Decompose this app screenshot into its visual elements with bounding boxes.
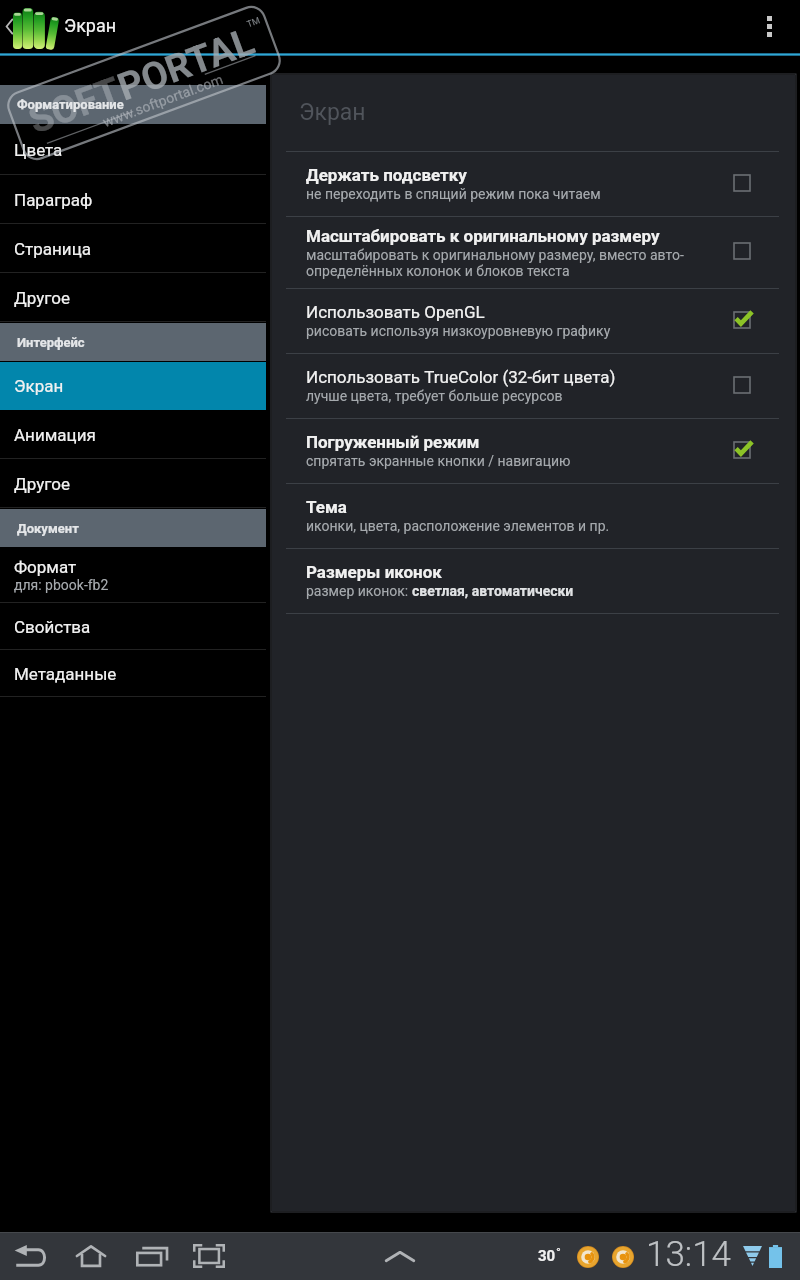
staticText: Формат [14, 557, 77, 577]
staticText: Тема [306, 497, 347, 517]
button[interactable]: Погруженный режим [272, 418, 795, 483]
staticText: SOFT [23, 68, 127, 143]
button[interactable]: Тема [272, 483, 795, 548]
staticText: Другое [14, 474, 70, 494]
button[interactable]: Свойства [0, 603, 266, 650]
staticText: Интерфейс [17, 335, 85, 350]
staticText: лучше цвета, требует больше ресурсов [306, 388, 563, 404]
staticText: масштабировать к оригинальному размеру, … [306, 247, 696, 279]
button[interactable]: Show navigation [374, 1232, 426, 1280]
staticText: Другое [14, 288, 70, 308]
button[interactable]: Recents [125, 1232, 177, 1280]
staticText: ° [556, 1245, 561, 1260]
button[interactable]: Держать подсветку [272, 151, 795, 216]
staticText: PORTAL [112, 19, 261, 110]
staticText: Использовать TrueColor (32-бит цвета) [306, 367, 616, 387]
staticText: Форматирование [17, 97, 124, 112]
staticText: спрятать экранные кнопки / навигацию [306, 453, 571, 469]
staticText: рисовать используя низкоуровневую график… [306, 323, 611, 339]
staticText: Экран [64, 15, 117, 36]
button[interactable]: Формат [0, 547, 266, 603]
staticText: Цвета [14, 140, 63, 160]
staticText: 30 [538, 1247, 556, 1265]
staticText: Держать подсветку [306, 165, 467, 185]
staticText: иконки, цвета, расположение элементов и … [306, 518, 610, 534]
staticText: Погруженный режим [306, 432, 480, 452]
staticText: Метаданные [14, 664, 117, 684]
staticText: Свойства [14, 617, 91, 637]
button[interactable]: Другое [0, 273, 266, 322]
staticText: www.softportal.com [100, 71, 225, 130]
button[interactable]: Back [4, 1232, 56, 1280]
button[interactable]: More options [744, 0, 794, 53]
staticText: 13:14 [646, 1234, 732, 1275]
button[interactable]: Экран [0, 362, 266, 410]
staticText: Размеры иконок [306, 562, 442, 582]
staticText: TM [245, 15, 262, 30]
staticText: Использовать OpenGL [306, 302, 485, 322]
staticText: Экран [299, 99, 366, 126]
staticText: Параграф [14, 190, 93, 210]
button[interactable]: Размеры иконок [272, 548, 795, 613]
staticText: Страница [14, 239, 91, 259]
button[interactable]: Использовать TrueColor (32-бит цвета) [272, 353, 795, 418]
staticText: светлая, автоматически [412, 583, 574, 599]
staticText: Масштабировать к оригинальному размеру [306, 226, 660, 246]
button[interactable]: Другое [0, 459, 266, 508]
staticText: для: pbook-fb2 [14, 577, 109, 593]
button[interactable]: Страница [0, 224, 266, 273]
button[interactable]: Back [0, 0, 130, 53]
button[interactable]: Использовать OpenGL [272, 288, 795, 353]
staticText: не переходить в спящий режим пока читаем [306, 186, 601, 202]
button[interactable]: Цвета [0, 125, 266, 175]
staticText: Документ [17, 521, 79, 536]
staticText: размер иконок: [306, 583, 412, 599]
staticText: Экран [14, 376, 64, 396]
button[interactable]: Анимация [0, 410, 266, 459]
button[interactable]: Home [65, 1232, 117, 1280]
button[interactable]: Screenshot [183, 1232, 235, 1280]
staticText: Анимация [14, 425, 96, 445]
button[interactable]: Масштабировать к оригинальному размеру [272, 216, 795, 288]
button[interactable]: Параграф [0, 175, 266, 224]
button[interactable]: Метаданные [0, 650, 266, 697]
